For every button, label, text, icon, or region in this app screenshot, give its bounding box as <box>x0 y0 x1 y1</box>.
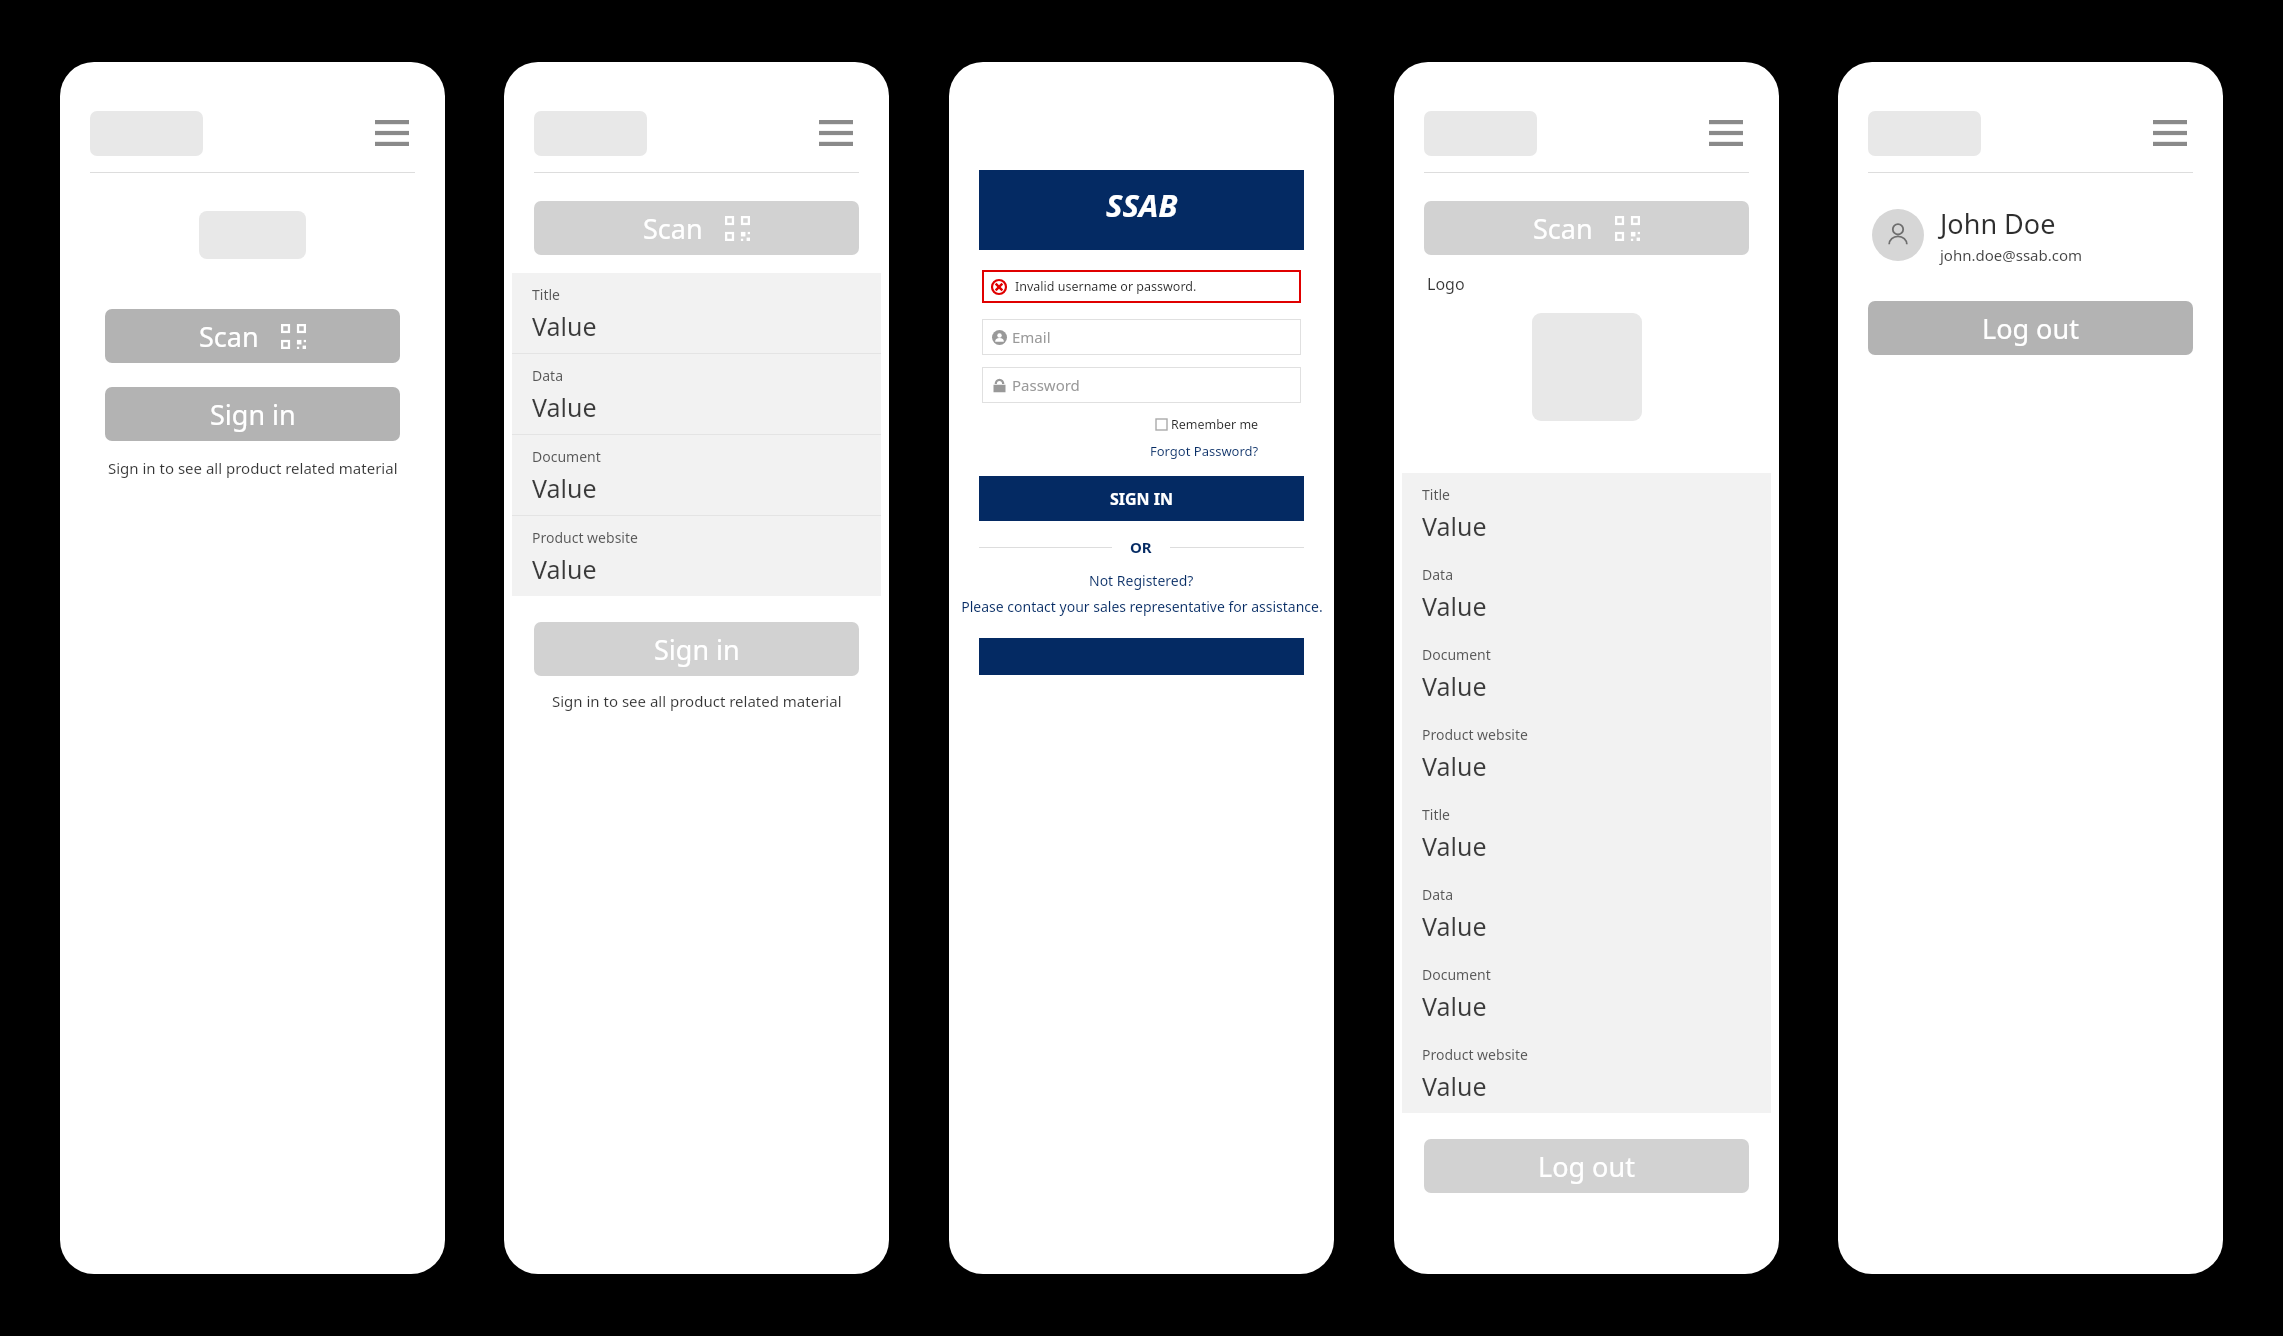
staticText: Invalid username or password. <box>1015 278 1197 295</box>
staticText: Value <box>1422 829 1487 863</box>
staticText: SIGN IN <box>1110 488 1174 510</box>
staticText: Data <box>1422 885 1453 904</box>
staticText: Remember me <box>1171 416 1259 433</box>
staticText: Value <box>1422 909 1487 943</box>
staticText: Product website <box>1422 1045 1528 1064</box>
staticText: Value <box>1422 669 1487 703</box>
button[interactable]: Invalid username or password. <box>982 270 1301 303</box>
button[interactable]: Password <box>982 367 1301 403</box>
button[interactable]: Title <box>1402 793 1771 873</box>
button[interactable]: Remember me <box>1156 416 1259 433</box>
staticText: Value <box>532 390 597 424</box>
staticText: Value <box>1422 989 1487 1023</box>
staticText: Sign in to see all product related mater… <box>108 458 398 478</box>
button[interactable]: Title <box>1402 473 1771 553</box>
button[interactable]: Product website <box>1402 713 1771 793</box>
button[interactable]: Log out <box>1868 301 2193 355</box>
button[interactable]: Data <box>1402 873 1771 953</box>
staticText: Scan <box>643 210 703 247</box>
staticText: John Doe <box>1940 205 2056 242</box>
button[interactable]: Profile avatar <box>1872 209 1924 261</box>
staticText: Title <box>1422 805 1450 824</box>
staticText: Value <box>532 552 597 586</box>
staticText: john.doe@ssab.com <box>1940 245 2083 265</box>
staticText: Data <box>1422 565 1453 584</box>
staticText: Password <box>1012 375 1080 395</box>
staticText: Log out <box>1982 310 2079 347</box>
button[interactable]: Scan <box>1424 201 1749 255</box>
button[interactable]: Document <box>1402 633 1771 713</box>
button[interactable]: Menu <box>813 110 859 156</box>
staticText: Value <box>1422 1069 1487 1103</box>
staticText: Logo <box>1427 273 1465 295</box>
staticText: Email <box>1012 327 1051 347</box>
staticText: Not Registered? <box>1089 571 1194 590</box>
button[interactable]: Sign in <box>534 622 859 676</box>
button[interactable]: Menu <box>1703 110 1749 156</box>
staticText: Scan <box>1533 210 1593 247</box>
button[interactable]: Email <box>982 319 1301 355</box>
staticText: Log out <box>1538 1148 1635 1185</box>
staticText: OR <box>1130 537 1152 557</box>
button[interactable]: Scan <box>534 201 859 255</box>
staticText: Title <box>1422 485 1450 504</box>
button[interactable]: Menu <box>369 110 415 156</box>
button[interactable]: Product website <box>1402 1033 1771 1113</box>
staticText: Sign in <box>654 631 740 668</box>
button[interactable]: Data <box>512 354 881 434</box>
button[interactable]: Document <box>1402 953 1771 1033</box>
staticText: Document <box>532 447 601 466</box>
button[interactable]: Sign in <box>105 387 400 441</box>
staticText: Please contact your sales representative… <box>961 597 1323 616</box>
staticText: Product website <box>532 528 638 547</box>
button[interactable]: Forgot Password? <box>1150 442 1259 460</box>
staticText: Title <box>532 285 560 304</box>
button[interactable]: Document <box>512 435 881 515</box>
button[interactable]: SIGN IN <box>979 476 1304 521</box>
staticText: Sign in to see all product related mater… <box>552 691 842 711</box>
staticText: Document <box>1422 965 1491 984</box>
button[interactable]: Product website <box>512 516 881 596</box>
staticText: Value <box>1422 749 1487 783</box>
staticText: Document <box>1422 645 1491 664</box>
button[interactable]: Log out <box>1424 1139 1749 1193</box>
staticText: Product website <box>1422 725 1528 744</box>
staticText: Value <box>532 309 597 343</box>
staticText: Data <box>532 366 563 385</box>
button[interactable]: Data <box>1402 553 1771 633</box>
staticText: Value <box>1422 589 1487 623</box>
staticText: SSAB <box>1106 184 1178 226</box>
button[interactable]: Title <box>512 273 881 353</box>
staticText: Value <box>1422 509 1487 543</box>
button[interactable]: Menu <box>2147 110 2193 156</box>
staticText: Scan <box>199 318 259 355</box>
staticText: Sign in <box>210 396 296 433</box>
button[interactable]: Scan <box>105 309 400 363</box>
staticText: Value <box>532 471 597 505</box>
